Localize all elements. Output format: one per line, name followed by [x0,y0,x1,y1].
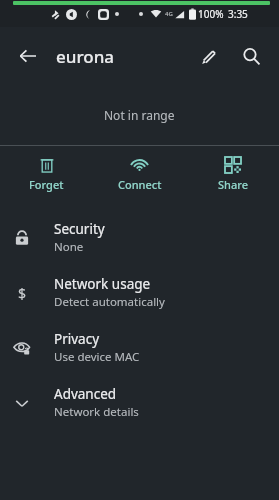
staticText: eurona [56,45,185,68]
staticText: Privacy [54,330,100,348]
button[interactable]: Edit [185,34,229,78]
button[interactable]: Connect [93,146,186,202]
staticText: Security [54,220,105,238]
button[interactable]: Back [8,36,48,76]
staticText: Use device MAC [54,349,140,365]
staticText: Detect automatically [54,294,165,310]
staticText: Advanced [54,385,117,403]
button[interactable]: Advanced [0,375,279,430]
staticText: Network usage [54,275,151,293]
staticText: Not in range [104,107,175,123]
staticText: None [54,239,84,255]
staticText: 100% [198,7,224,21]
staticText: Network details [54,404,139,420]
staticText: $ [18,284,27,302]
button[interactable]: $ [0,265,279,320]
button[interactable]: Search [229,34,273,78]
button[interactable]: Security [0,210,279,265]
staticText: 4G [165,10,173,18]
button[interactable]: Forget [0,146,93,202]
staticText: Forget [29,177,64,192]
staticText: Share [218,177,248,192]
button[interactable]: Privacy [0,320,279,375]
staticText: 3:35 [228,7,248,21]
staticText: Connect [118,177,162,192]
button[interactable]: Share [186,146,279,202]
